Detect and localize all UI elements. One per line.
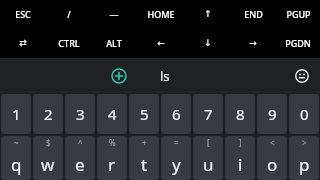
staticText: ALT (106, 37, 122, 49)
button[interactable]: Slash (46, 0, 91, 27)
button[interactable]: Add clipboard item (104, 61, 134, 91)
staticText: r (108, 153, 116, 176)
button[interactable]: PGUP (276, 0, 320, 27)
staticText: e (75, 153, 85, 176)
button[interactable]: Arrow down (186, 27, 230, 58)
button[interactable]: 0 (289, 94, 319, 134)
button[interactable]: PGDN (276, 27, 320, 58)
staticText: 8 (236, 104, 245, 124)
staticText: ls (160, 67, 170, 85)
button[interactable]: 4 (97, 94, 127, 134)
button[interactable]: ESC (0, 0, 46, 27)
staticText: 9 (268, 104, 277, 124)
staticText: $ (46, 137, 51, 148)
staticText: ↑ (204, 9, 212, 19)
staticText: = (174, 137, 179, 148)
button[interactable]: Tab (0, 27, 46, 58)
staticText: END (244, 8, 263, 20)
staticText: — (109, 8, 119, 20)
staticText: y (172, 153, 181, 176)
staticText: / (67, 8, 71, 20)
staticText: 3 (76, 104, 85, 124)
button[interactable]: $ (33, 136, 63, 180)
staticText: < (270, 137, 275, 148)
staticText: t (141, 153, 148, 176)
staticText: o (267, 153, 278, 176)
staticText: u (203, 153, 214, 176)
button[interactable]: 8 (225, 94, 255, 134)
button[interactable]: = (161, 136, 191, 180)
button[interactable]: 9 (257, 94, 287, 134)
staticText: 6 (172, 104, 181, 124)
staticText: p (299, 153, 310, 176)
staticText: ↓ (204, 38, 212, 48)
staticText: CTRL (58, 37, 80, 49)
button[interactable]: ] (225, 136, 255, 180)
staticText: HOME (147, 8, 175, 20)
button[interactable]: < (257, 136, 287, 180)
button[interactable]: Arrow left (136, 27, 186, 58)
button[interactable]: ALT (91, 27, 136, 58)
staticText: 2 (44, 104, 53, 124)
button[interactable]: ls (142, 58, 188, 94)
button[interactable]: % (97, 136, 127, 180)
button[interactable]: Arrow up (186, 0, 230, 27)
staticText: i (238, 153, 243, 176)
staticText: [ (207, 137, 210, 148)
button[interactable]: Dash (91, 0, 136, 27)
staticText: > (302, 137, 307, 148)
staticText: + (142, 137, 147, 148)
staticText: ^ (78, 137, 83, 148)
button[interactable]: 3 (65, 94, 95, 134)
button[interactable]: Emoji (288, 62, 316, 90)
staticText: 0 (300, 104, 309, 124)
staticText: ← (157, 38, 165, 48)
button[interactable]: 7 (193, 94, 223, 134)
staticText: ] (239, 137, 242, 148)
button[interactable]: ^ (65, 136, 95, 180)
staticText: 1 (12, 104, 21, 124)
button[interactable]: [ (193, 136, 223, 180)
button[interactable]: Arrow right (230, 27, 276, 58)
staticText: 5 (140, 104, 149, 124)
button[interactable]: 2 (33, 94, 63, 134)
staticText: w (41, 153, 55, 176)
staticText: ⇄ (19, 38, 27, 48)
staticText: ~ (14, 137, 19, 148)
button[interactable]: 1 (1, 94, 31, 134)
button[interactable]: ~ (1, 136, 31, 180)
button[interactable]: HOME (136, 0, 186, 27)
staticText: 7 (204, 104, 213, 124)
staticText: → (249, 38, 257, 48)
staticText: q (11, 153, 22, 176)
button[interactable]: CTRL (46, 27, 91, 58)
button[interactable]: 5 (129, 94, 159, 134)
button[interactable]: + (129, 136, 159, 180)
button[interactable]: END (230, 0, 276, 27)
staticText: ESC (15, 8, 31, 20)
button[interactable]: 6 (161, 94, 191, 134)
staticText: 4 (108, 104, 117, 124)
button[interactable]: > (289, 136, 319, 180)
staticText: PGUP (286, 8, 311, 20)
staticText: PGDN (285, 37, 311, 49)
staticText: % (109, 137, 116, 148)
